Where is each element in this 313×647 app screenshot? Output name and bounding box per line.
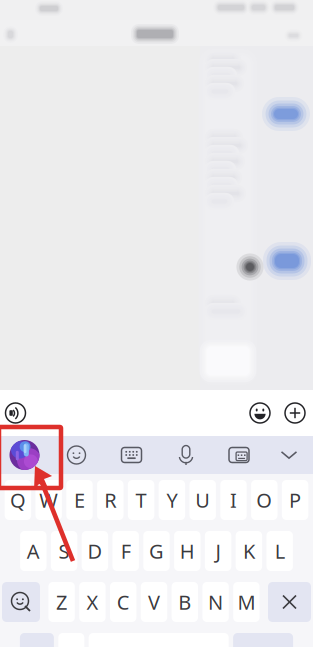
button[interactable]: K — [236, 531, 262, 571]
button[interactable]: V — [141, 582, 167, 622]
button[interactable]: C — [110, 582, 136, 622]
button[interactable]: F — [112, 531, 139, 571]
staticText: B — [178, 589, 191, 615]
button[interactable]: H — [174, 531, 200, 571]
staticText: H — [180, 538, 195, 564]
staticText: O — [256, 487, 272, 513]
button[interactable]: G — [143, 531, 170, 571]
staticText: V — [148, 589, 160, 615]
staticText: Z — [56, 589, 67, 615]
button[interactable]: Voice message — [0, 390, 31, 436]
button[interactable]: Delete — [268, 582, 311, 622]
button[interactable]: Keyboard — [104, 436, 159, 474]
staticText: J — [216, 538, 221, 564]
button[interactable]: L — [266, 531, 293, 571]
staticText: W — [39, 487, 58, 513]
button[interactable]: Emoji — [243, 390, 277, 436]
button[interactable]: N — [202, 582, 229, 622]
staticText: I — [230, 487, 237, 513]
staticText: D — [87, 538, 102, 564]
staticText: X — [86, 589, 98, 615]
button[interactable]: Assistant avatar — [0, 436, 49, 474]
button[interactable]: I — [220, 480, 247, 520]
button[interactable]: Stickers — [49, 436, 104, 474]
button[interactable]: Q — [5, 480, 31, 520]
button[interactable]: Y — [159, 480, 185, 520]
button[interactable]: M — [233, 582, 260, 622]
staticText: S — [59, 538, 70, 564]
button[interactable]: More — [277, 390, 313, 436]
button[interactable]: E — [66, 480, 93, 520]
button[interactable]: Voice input — [159, 436, 213, 474]
button[interactable]: S — [51, 531, 77, 571]
button[interactable]: W — [35, 480, 62, 520]
staticText: A — [27, 538, 40, 564]
staticText: C — [117, 589, 130, 615]
button[interactable]: A — [20, 531, 46, 571]
staticText: R — [104, 487, 116, 513]
staticText: F — [121, 538, 131, 564]
staticText: N — [208, 589, 223, 615]
staticText: Y — [166, 487, 177, 513]
staticText: E — [74, 487, 85, 513]
button[interactable]: Z — [48, 582, 75, 622]
staticText: K — [243, 538, 255, 564]
button[interactable]: J — [205, 531, 231, 571]
button[interactable]: D — [82, 531, 108, 571]
staticText: Q — [10, 487, 26, 513]
staticText: T — [136, 487, 147, 513]
button[interactable]: Emoji search — [2, 582, 40, 622]
button[interactable]: R — [97, 480, 123, 520]
button[interactable]: X — [79, 582, 106, 622]
button[interactable]: Card — [213, 436, 265, 474]
button[interactable]: P — [282, 480, 308, 520]
button[interactable]: U — [189, 480, 216, 520]
staticText: U — [195, 487, 210, 513]
button[interactable]: B — [172, 582, 198, 622]
staticText: G — [149, 538, 164, 564]
button[interactable]: O — [251, 480, 277, 520]
staticText: P — [289, 487, 301, 513]
button[interactable]: Collapse — [265, 436, 313, 474]
staticText: L — [275, 538, 285, 564]
button[interactable]: T — [128, 480, 154, 520]
staticText: M — [237, 589, 255, 615]
